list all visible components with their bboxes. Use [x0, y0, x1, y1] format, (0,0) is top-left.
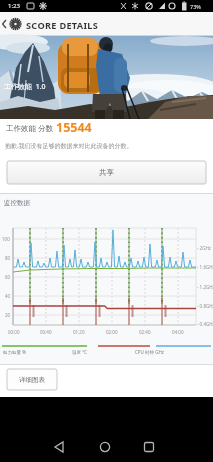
staticText: - 0.8GHz: [197, 303, 213, 309]
staticText: 02:40: [139, 329, 151, 335]
staticText: 电力电量 %: [3, 349, 26, 355]
staticText: - 2GHz: [197, 245, 211, 251]
staticText: 00:40: [40, 329, 52, 335]
staticText: - 1.2GHz: [197, 284, 213, 290]
staticText: - 0.4GHz: [197, 321, 213, 327]
staticText: 监控数据: [4, 199, 30, 207]
staticText: 00:00: [8, 329, 20, 335]
staticText: 02:00: [106, 329, 118, 335]
staticText: - 1.6GHz: [197, 264, 213, 270]
button[interactable]: 共享: [7, 161, 206, 184]
staticText: CPU 时钟 GHz: [135, 349, 164, 355]
button[interactable]: SCORE DETAILS: [0, 12, 213, 36]
button[interactable]: 详细图表: [7, 369, 57, 390]
staticText: 15544: [56, 119, 92, 136]
staticText: 80: [5, 255, 11, 261]
staticText: 工作效能 1.0: [4, 82, 46, 92]
staticText: 温度 °C: [72, 349, 87, 355]
staticText: 60: [5, 274, 11, 280]
staticText: 详细图表: [19, 376, 45, 384]
staticText: 73%: [190, 3, 201, 10]
staticText: 工作效能 分数: [6, 123, 53, 133]
button[interactable]: [133, 432, 165, 462]
staticText: 1:23: [8, 2, 20, 10]
staticText: 01:20: [73, 329, 85, 335]
staticText: 04:00: [172, 329, 184, 335]
staticText: SCORE DETAILS: [26, 19, 99, 32]
staticText: 100: [2, 236, 10, 242]
staticText: 20: [5, 312, 11, 318]
staticText: 40: [5, 293, 11, 299]
button[interactable]: [43, 432, 75, 462]
staticText: 共享: [99, 168, 114, 177]
button[interactable]: [89, 432, 121, 462]
staticText: 抱歉,我们没有足够的数据来对比此设备的分数。: [5, 142, 133, 150]
